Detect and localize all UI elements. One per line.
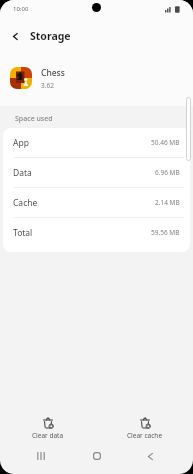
- staticText: Storage: [30, 29, 71, 43]
- staticText: Space used: [15, 114, 53, 124]
- staticText: Total: [13, 227, 33, 239]
- button[interactable]: [10, 67, 32, 89]
- staticText: 10:00: [13, 5, 29, 13]
- staticText: 6.96 MB: [155, 168, 180, 177]
- button[interactable]: Storage: [0, 16, 193, 56]
- button[interactable]: [139, 446, 161, 466]
- staticText: 50.46 MB: [151, 138, 180, 147]
- button[interactable]: [86, 446, 108, 466]
- button[interactable]: Chess: [10, 56, 193, 100]
- button[interactable]: App: [13, 128, 180, 157]
- staticText: Cache: [13, 197, 38, 209]
- button[interactable]: Clear data: [0, 417, 96, 442]
- button[interactable]: Clear cache: [96, 417, 193, 442]
- staticText: 3.62: [41, 81, 54, 90]
- button[interactable]: [30, 446, 52, 466]
- button[interactable]: Cache: [13, 188, 180, 217]
- staticText: Clear cache: [127, 431, 163, 440]
- staticText: Data: [13, 167, 32, 179]
- button[interactable]: [0, 19, 30, 53]
- staticText: Clear data: [32, 431, 64, 440]
- button[interactable]: Total: [13, 218, 180, 247]
- staticText: Chess: [41, 67, 65, 79]
- button[interactable]: Data: [13, 158, 180, 187]
- staticText: 2.14 MB: [155, 198, 180, 207]
- staticText: App: [13, 137, 29, 149]
- staticText: 59.56 MB: [151, 228, 180, 237]
